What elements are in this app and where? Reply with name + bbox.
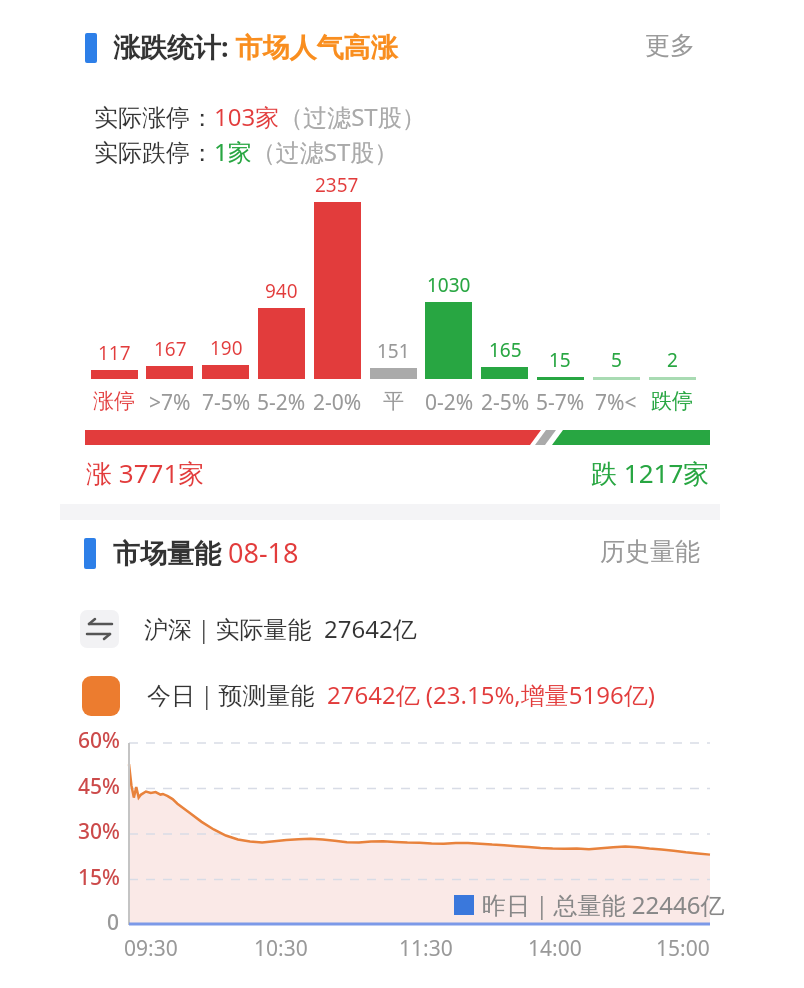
staticText: 15% (78, 863, 120, 892)
staticText: 0 (107, 908, 120, 937)
staticText: 2 (667, 347, 678, 373)
staticText: 历史量能 (600, 536, 700, 567)
staticText: 60% (78, 726, 120, 755)
button[interactable]: 更多 (645, 30, 695, 61)
staticText: 165 (489, 337, 522, 363)
staticText: 沪深｜实际量能 27642亿 (144, 612, 417, 645)
staticText: 涨停 (93, 388, 135, 414)
staticText: 940 (265, 278, 298, 304)
staticText: >7% (149, 388, 191, 417)
staticText: 涨 3771家 (86, 455, 205, 491)
button[interactable]: 5-7% (526, 388, 594, 417)
staticText: 11:30 (399, 934, 453, 963)
staticText: 昨日｜总量能 22446亿 (482, 888, 725, 921)
staticText: 14:00 (528, 934, 582, 963)
staticText: 167 (154, 336, 187, 362)
staticText: 2-5% (481, 388, 530, 417)
button[interactable]: 0-2% (415, 388, 483, 417)
staticText: 151 (377, 338, 410, 364)
button[interactable]: 2-5% (471, 388, 539, 417)
staticText: 45% (78, 772, 120, 801)
staticText: 117 (98, 340, 131, 366)
staticText: 实际涨停：103家（过滤ST股） (94, 100, 426, 133)
button[interactable]: 7%< (582, 388, 650, 417)
staticText: 市场量能 08-18 (113, 534, 299, 571)
button[interactable]: 7-5% (192, 388, 260, 417)
staticText: 5 (611, 347, 622, 373)
staticText: 跌 1217家 (591, 455, 710, 491)
staticText: 2357 (315, 172, 359, 198)
staticText: 10:30 (254, 934, 308, 963)
staticText: 7-5% (202, 388, 251, 417)
button[interactable]: 跌停 (638, 388, 706, 414)
staticText: 7%< (595, 388, 637, 417)
staticText: 15:00 (656, 934, 710, 963)
staticText: 跌停 (651, 388, 693, 414)
staticText: 0-2% (425, 388, 474, 417)
button[interactable]: 涨停 (80, 388, 148, 414)
staticText: 实际跌停：1家（过滤ST股） (94, 135, 399, 168)
staticText: 2-0% (313, 388, 362, 417)
staticText: 平 (383, 388, 404, 414)
staticText: 190 (210, 335, 243, 361)
button[interactable]: 历史量能 (600, 536, 700, 567)
staticText: 30% (78, 817, 120, 846)
staticText: 更多 (645, 30, 695, 61)
staticText: 09:30 (124, 934, 178, 963)
staticText: 15 (549, 347, 571, 373)
button[interactable]: 5-2% (247, 388, 315, 417)
staticText: 1030 (427, 272, 471, 298)
staticText: 今日｜预测量能 27642亿 (23.15%,增量5196亿) (147, 678, 655, 711)
staticText: 5-2% (257, 388, 306, 417)
button[interactable]: 2-0% (303, 388, 371, 417)
staticText: 涨跌统计: 市场人气高涨 (113, 28, 398, 65)
staticText: 5-7% (536, 388, 585, 417)
button[interactable]: 平 (359, 388, 427, 414)
button[interactable]: >7% (136, 388, 204, 417)
